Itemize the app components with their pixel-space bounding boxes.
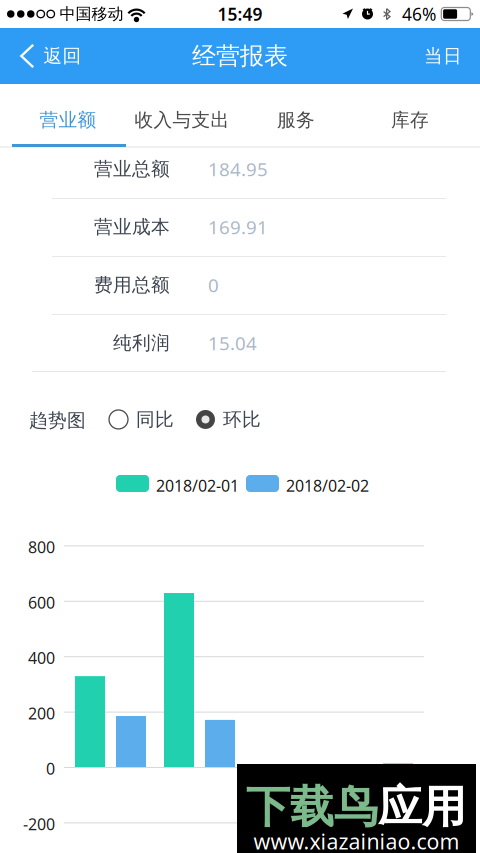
- staticText: 应用: [378, 780, 466, 834]
- staticText: -200: [23, 813, 55, 835]
- staticText: www.xiazainiao.com: [253, 827, 459, 853]
- staticText: 800: [28, 536, 55, 558]
- staticText: 15:49: [217, 2, 262, 25]
- button[interactable]: 当日: [406, 28, 480, 84]
- staticText: 2018/02-01: [156, 475, 239, 496]
- staticText: 费用总额: [94, 273, 170, 296]
- button[interactable]: 环比: [192, 404, 265, 435]
- staticText: 环比: [223, 408, 261, 431]
- button[interactable]: 同比: [105, 404, 178, 435]
- staticText: 0: [46, 758, 55, 779]
- staticText: 当日: [424, 44, 462, 67]
- staticText: 46%: [402, 2, 436, 25]
- staticText: 15.04: [208, 331, 257, 355]
- staticText: 400: [28, 647, 55, 668]
- staticText: 下载鸟: [246, 780, 378, 834]
- button[interactable]: 营业额: [11, 80, 125, 152]
- staticText: 同比: [136, 408, 174, 431]
- button[interactable]: 库存: [353, 80, 467, 152]
- staticText: 趋势图: [29, 409, 86, 432]
- staticText: 200: [28, 703, 55, 724]
- staticText: 纯利润: [113, 331, 170, 354]
- button[interactable]: 服务: [239, 80, 353, 152]
- staticText: 库存: [391, 108, 429, 131]
- staticText: 0: [208, 273, 219, 297]
- staticText: 169.91: [208, 215, 268, 239]
- staticText: 184.95: [208, 157, 268, 181]
- staticText: 经营报表: [192, 41, 288, 71]
- staticText: 2018/02-02: [286, 475, 369, 496]
- button[interactable]: 返回: [0, 28, 95, 84]
- staticText: 营业成本: [94, 215, 170, 238]
- staticText: 收入与支出: [134, 108, 229, 131]
- button[interactable]: 收入与支出: [125, 80, 239, 152]
- staticText: 返回: [43, 44, 81, 67]
- staticText: 中国移动: [59, 4, 123, 24]
- staticText: 营业总额: [94, 157, 170, 180]
- staticText: 600: [28, 592, 55, 613]
- staticText: 营业额: [39, 108, 96, 131]
- staticText: 服务: [277, 108, 315, 131]
